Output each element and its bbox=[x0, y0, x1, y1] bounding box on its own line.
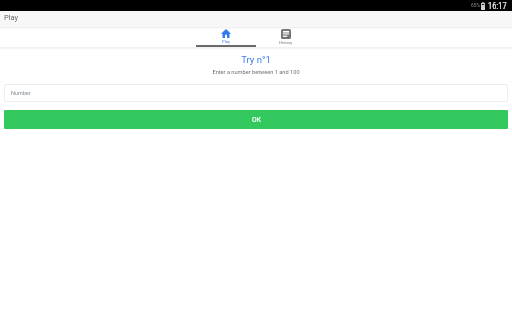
staticText: 65% bbox=[471, 3, 480, 9]
button[interactable]: OK bbox=[4, 110, 508, 129]
button[interactable]: History tab bbox=[256, 27, 316, 47]
staticText: OK bbox=[252, 116, 261, 124]
staticText: 16:17 bbox=[488, 1, 507, 11]
other: History tab bbox=[281, 29, 291, 39]
other: Play tab bbox=[221, 29, 231, 38]
staticText: Try n°1 bbox=[0, 54, 512, 65]
staticText: Number bbox=[11, 90, 31, 96]
staticText: Enter a number between 1 and 100 bbox=[0, 69, 512, 76]
staticText: Play bbox=[222, 39, 230, 44]
staticText: History bbox=[279, 40, 293, 45]
button[interactable]: Number bbox=[4, 84, 508, 102]
button[interactable]: Play tab bbox=[196, 27, 256, 47]
staticText: Play bbox=[4, 13, 19, 22]
